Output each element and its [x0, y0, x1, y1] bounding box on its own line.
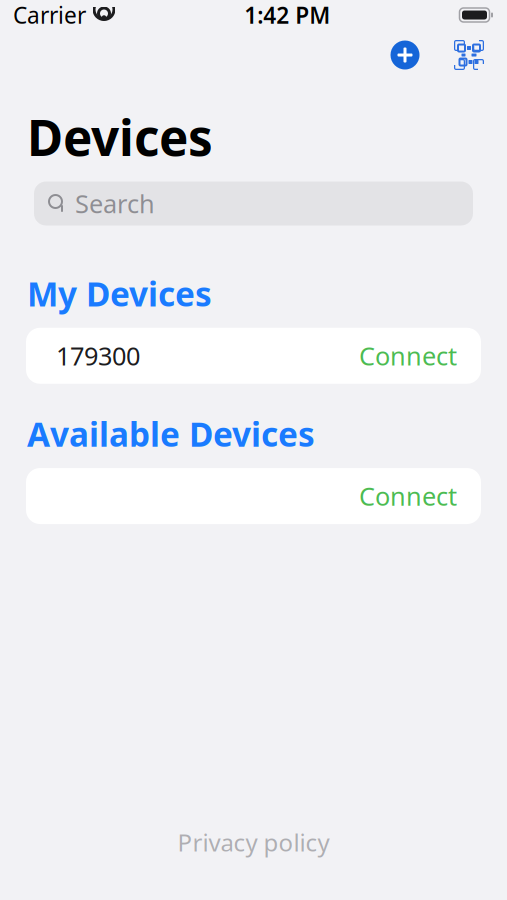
- button[interactable]: Scan QR code: [447, 33, 491, 77]
- staticText: Search: [75, 187, 155, 220]
- button[interactable]: Add device: [383, 33, 427, 77]
- button[interactable]: Search: [34, 181, 473, 225]
- staticText: 179300: [56, 339, 140, 373]
- button[interactable]: Privacy policy: [163, 820, 343, 864]
- staticText: Available Devices: [27, 412, 315, 456]
- button[interactable]: 179300: [26, 328, 481, 384]
- staticText: 1:42 PM: [244, 0, 330, 30]
- staticText: Privacy policy: [177, 826, 329, 858]
- staticText: Carrier: [13, 0, 86, 30]
- staticText: Devices: [27, 104, 213, 169]
- button[interactable]: Connect: [26, 468, 481, 524]
- staticText: My Devices: [27, 271, 212, 316]
- staticText: Connect: [359, 339, 457, 373]
- staticText: Connect: [359, 479, 457, 513]
